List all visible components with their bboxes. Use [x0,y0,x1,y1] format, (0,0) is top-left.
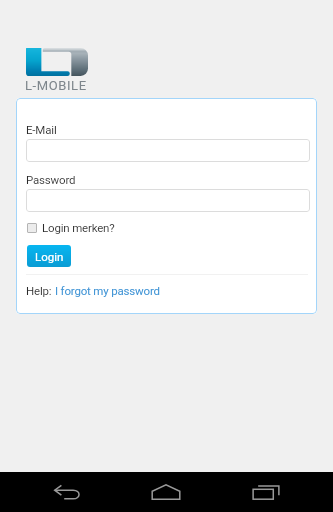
button[interactable]: Login [27,245,71,267]
button[interactable] [26,139,310,162]
staticText: Help: [26,284,55,297]
staticText: Login [35,250,64,263]
staticText: L-MOBILE [25,78,87,93]
button[interactable] [26,189,310,212]
staticText: E-Mail [26,123,57,136]
button[interactable]: Recent apps [236,472,296,512]
button[interactable]: Login merken? [27,221,115,234]
staticText: Login merken? [42,221,115,234]
button[interactable]: Back [37,472,97,512]
button[interactable]: Home [136,472,196,512]
button[interactable]: I forgot my password [55,284,160,297]
staticText: Password [26,173,76,186]
